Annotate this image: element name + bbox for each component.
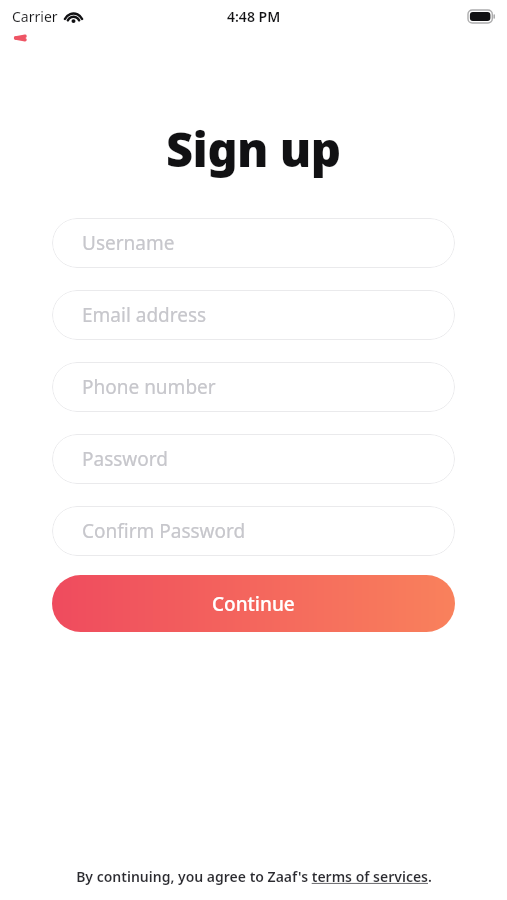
button[interactable]: Phone number [52, 362, 455, 412]
button[interactable]: Email address [52, 290, 455, 340]
staticText: Confirm Password [82, 518, 246, 544]
button[interactable]: Password [52, 434, 455, 484]
button[interactable]: Continue [52, 575, 455, 632]
staticText: Username [82, 230, 175, 256]
staticText: 4:48 PM [227, 7, 281, 26]
button[interactable]: By continuing, you agree to Zaaf's terms… [64, 861, 444, 892]
staticText: Password [82, 446, 168, 472]
staticText: Email address [82, 302, 207, 328]
button[interactable]: Username [52, 218, 455, 268]
button[interactable]: Back [0, 32, 87, 44]
staticText: Carrier [12, 7, 58, 26]
staticText: Sign up [166, 117, 341, 181]
button[interactable]: Confirm Password [52, 506, 455, 556]
staticText: Continue [212, 591, 295, 617]
other: Wi-Fi signal [64, 10, 83, 24]
staticText: Phone number [82, 374, 216, 400]
other: Battery full [468, 10, 495, 23]
